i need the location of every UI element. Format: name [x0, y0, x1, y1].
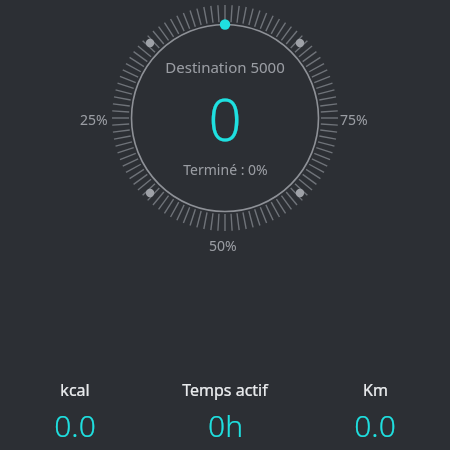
button[interactable]: Objectif de pas: [106, 0, 344, 237]
staticText: 25%: [80, 110, 108, 129]
staticText: Km: [363, 379, 388, 401]
staticText: 75%: [340, 110, 368, 129]
button[interactable]: Temps actif: [150, 377, 300, 448]
staticText: 0: [208, 79, 242, 158]
staticText: Destination 5000: [165, 57, 285, 77]
button[interactable]: kcal: [0, 377, 150, 448]
staticText: 0.0: [54, 405, 96, 446]
staticText: Temps actif: [182, 379, 268, 401]
staticText: 0h: [208, 405, 243, 446]
staticText: 0.0: [354, 405, 396, 446]
staticText: 50%: [209, 236, 237, 255]
button[interactable]: Km: [300, 377, 450, 448]
staticText: Terminé : 0%: [183, 160, 268, 179]
staticText: kcal: [60, 379, 90, 401]
